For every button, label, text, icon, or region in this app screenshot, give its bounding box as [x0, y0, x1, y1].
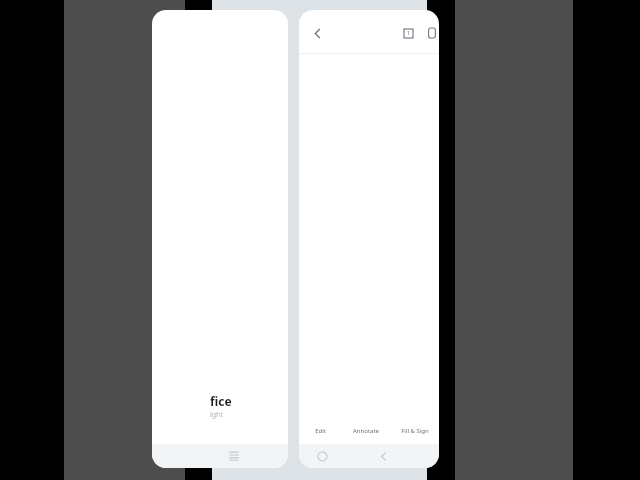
- staticText: Edit: [315, 427, 326, 435]
- staticText: ight: [210, 410, 223, 420]
- staticText: Annotate: [353, 427, 379, 435]
- button[interactable]: Back: [371, 444, 395, 468]
- button[interactable]: Edit: [299, 418, 341, 444]
- button[interactable]: Recents: [221, 444, 247, 468]
- button[interactable]: Annotate: [341, 418, 390, 444]
- button[interactable]: Fill & Sign: [390, 418, 439, 444]
- button[interactable]: Home: [310, 444, 334, 468]
- staticText: 1: [407, 30, 410, 37]
- button[interactable]: fice: [152, 10, 288, 468]
- button[interactable]: Back: [303, 19, 331, 47]
- staticText: fice: [210, 393, 232, 409]
- staticText: Fill & Sign: [401, 427, 429, 435]
- button[interactable]: Page number: [396, 21, 420, 45]
- button[interactable]: View mode: [420, 21, 439, 45]
